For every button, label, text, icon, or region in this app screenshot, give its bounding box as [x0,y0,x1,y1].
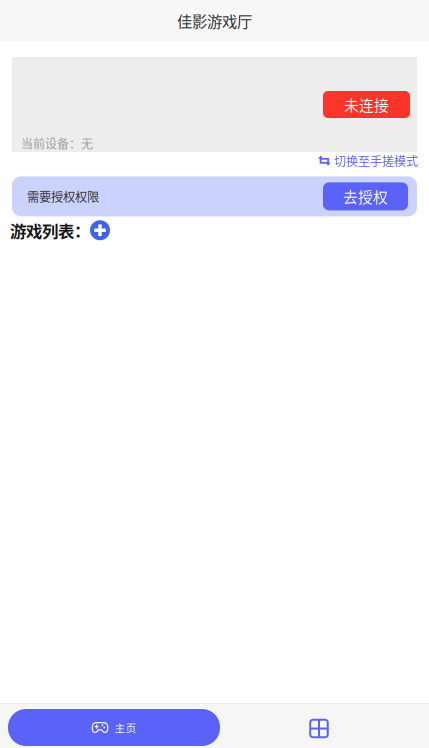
button[interactable]: 添加游戏 [90,220,110,240]
staticText: 未连接 [344,94,389,115]
button[interactable]: 游戏库 [289,710,349,747]
button[interactable]: 切换至手搓模式 [318,152,418,169]
button[interactable]: 主页 [8,709,220,746]
staticText: 当前设备：无 [21,135,93,152]
staticText: 去授权 [343,186,388,207]
button[interactable]: 去授权 [323,182,408,210]
staticText: 佳影游戏厅 [177,9,252,32]
staticText: 游戏列表： [10,218,90,242]
staticText: 切换至手搓模式 [334,152,418,169]
staticText: 主页 [114,720,136,735]
staticText: 需要授权权限 [27,187,99,205]
button[interactable]: 未连接 [323,91,410,118]
